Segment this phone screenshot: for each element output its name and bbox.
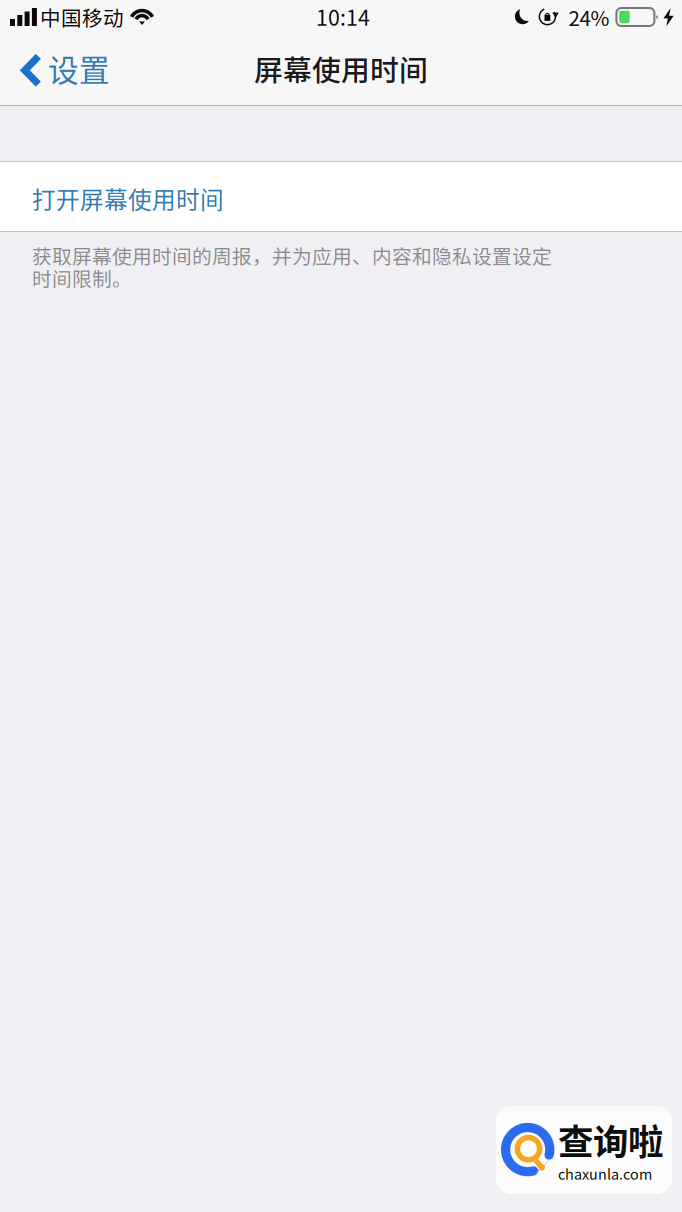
staticText: 24% bbox=[568, 2, 609, 32]
staticText: 打开屏幕使用时间 bbox=[32, 181, 224, 216]
staticText: 10:14 bbox=[316, 1, 370, 32]
staticText: 屏幕使用时间 bbox=[254, 48, 428, 89]
staticText: 查询啦 bbox=[558, 1114, 663, 1165]
button[interactable]: 设置 bbox=[0, 36, 124, 105]
button[interactable]: 打开屏幕使用时间 bbox=[0, 162, 682, 231]
staticText: 获取屏幕使用时间的周报，并为应用、内容和隐私设置设定时间限制。 bbox=[32, 241, 552, 292]
staticText: chaxunla.com bbox=[558, 1163, 652, 1184]
staticText: 中国移动 bbox=[40, 2, 124, 32]
staticText: 设置 bbox=[48, 46, 110, 91]
